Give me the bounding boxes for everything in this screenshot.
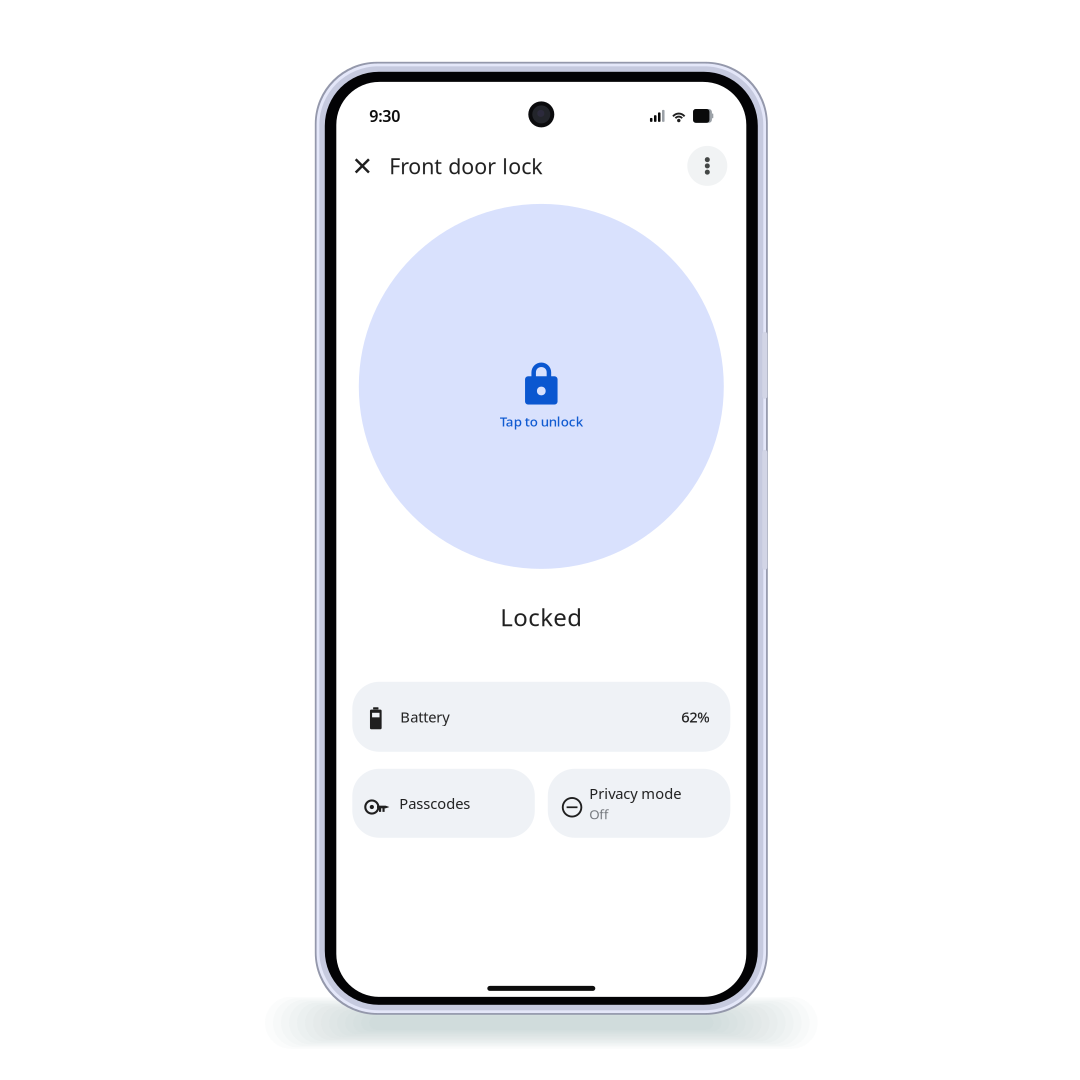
button[interactable]: Passcodes [352, 769, 535, 838]
button[interactable]: Privacy mode [548, 769, 730, 838]
staticText: Passcodes [399, 793, 470, 813]
staticText: Front door lock [389, 152, 542, 180]
staticText: Off [589, 805, 608, 823]
staticText: Tap to unlock [500, 412, 583, 430]
button[interactable]: Close [342, 146, 382, 186]
button[interactable]: Tap to unlock [359, 204, 724, 569]
staticText: 9:30 [369, 105, 400, 126]
staticText: 62% [681, 707, 709, 726]
staticText: Privacy mode [589, 784, 681, 803]
button[interactable]: More options [687, 146, 727, 186]
staticText: Locked [500, 601, 582, 633]
button[interactable]: Battery [352, 682, 730, 752]
staticText: Battery [400, 707, 449, 726]
